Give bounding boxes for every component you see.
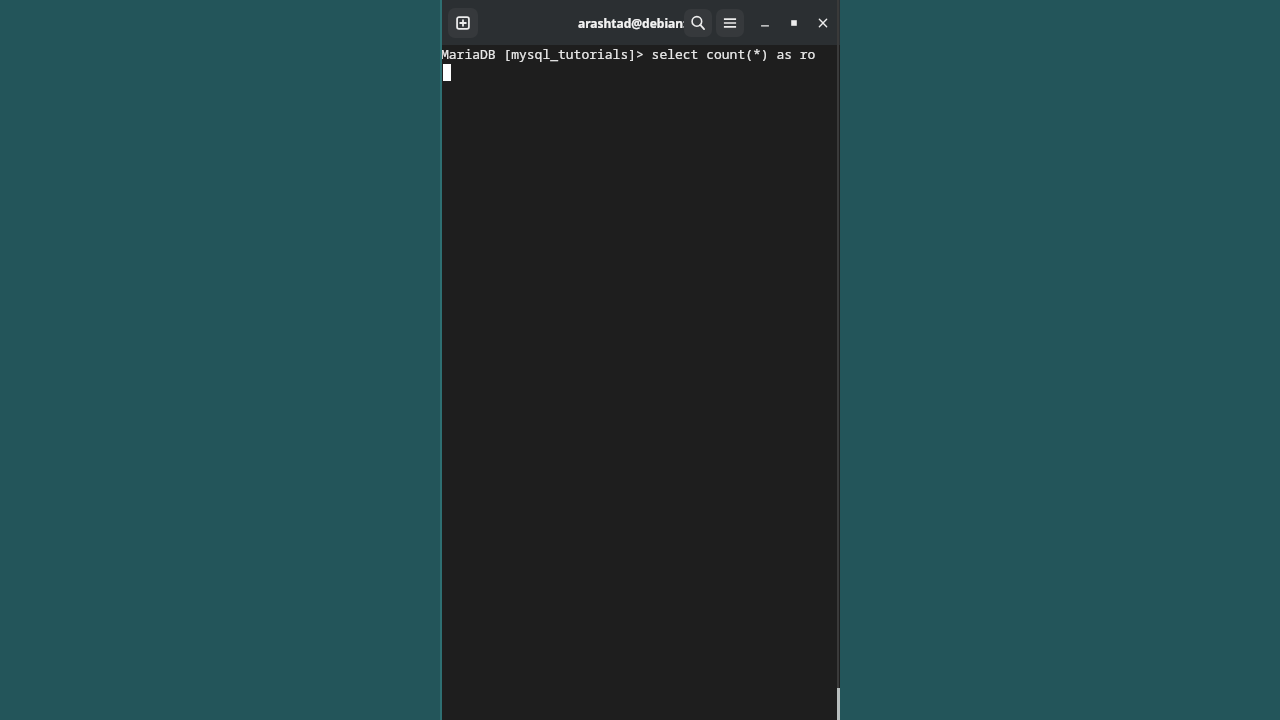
button[interactable]: Close [810, 10, 836, 36]
staticText: MariaDB [mysql_tutorials]> select count(… [441, 45, 816, 63]
staticText: arashtad@debian: ~ [578, 15, 697, 31]
button[interactable]: Menu [716, 9, 744, 37]
button[interactable]: Search [684, 9, 712, 37]
button[interactable]: Maximize [781, 10, 807, 36]
button[interactable]: New tab [448, 8, 478, 38]
button[interactable]: Minimize [752, 10, 778, 36]
